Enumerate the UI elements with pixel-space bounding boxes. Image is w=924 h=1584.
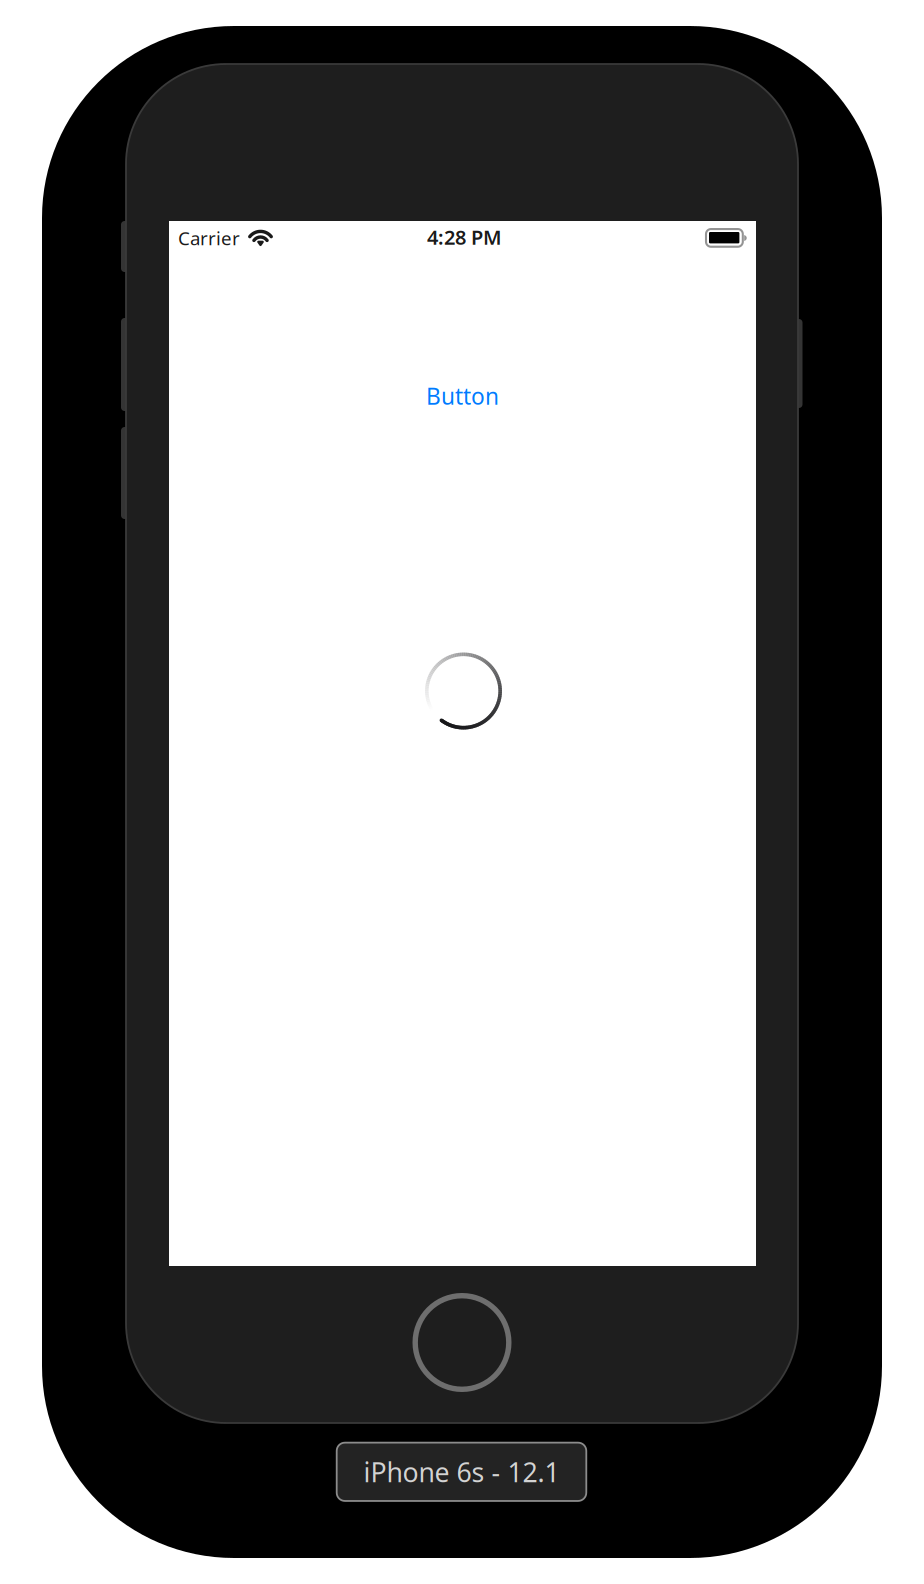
staticText: Button: [426, 381, 499, 411]
staticText: iPhone 6s - 12.1: [363, 1454, 559, 1489]
staticText: Carrier: [178, 226, 240, 250]
staticText: 4:28 PM: [427, 224, 502, 250]
button[interactable]: Button: [418, 377, 507, 415]
